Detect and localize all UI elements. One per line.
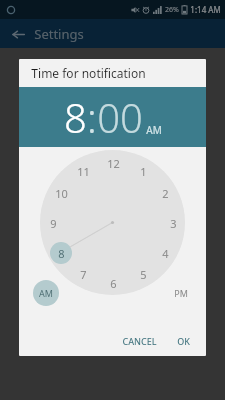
button[interactable]: AM <box>33 280 59 306</box>
staticText: 3 <box>170 216 177 231</box>
button[interactable]: 10 <box>50 182 72 204</box>
button[interactable]: 4 <box>154 242 176 264</box>
button[interactable]: AM <box>146 123 162 137</box>
staticText: 00 <box>97 90 143 144</box>
button[interactable]: 5 <box>132 263 154 285</box>
button[interactable]: CANCEL <box>116 331 163 351</box>
button[interactable]: 2 <box>154 182 176 204</box>
staticText: 8 <box>64 90 87 144</box>
staticText: 12 <box>107 156 120 171</box>
staticText: : <box>87 90 97 144</box>
button[interactable]: 8 <box>50 242 72 264</box>
button[interactable]: OK <box>171 331 196 351</box>
staticText: 9 <box>50 216 57 231</box>
staticText: OK <box>177 335 190 347</box>
staticText: 7 <box>80 267 87 282</box>
staticText: AM <box>39 287 53 299</box>
button[interactable]: 11 <box>72 160 94 182</box>
button[interactable]: 9 <box>42 212 64 234</box>
staticText: 1 <box>140 164 147 179</box>
staticText: Time for notification <box>31 65 146 81</box>
staticText: 1:14 AM <box>190 4 221 15</box>
staticText: AM <box>146 123 162 137</box>
button[interactable]: 00 <box>97 90 143 144</box>
staticText: 10 <box>55 186 68 201</box>
button[interactable]: 6 <box>102 272 124 294</box>
staticText: CANCEL <box>122 335 157 347</box>
staticText: 6 <box>110 276 117 291</box>
staticText: PM <box>174 287 188 299</box>
staticText: 5 <box>140 267 147 282</box>
button[interactable]: 7 <box>72 263 94 285</box>
staticText: 11 <box>77 164 90 179</box>
button[interactable]: Back <box>8 24 28 44</box>
button[interactable]: 1 <box>132 160 154 182</box>
staticText: 2 <box>162 186 169 201</box>
staticText: Settings <box>34 25 84 43</box>
staticText: 26% <box>165 5 179 15</box>
staticText: 8 <box>58 246 65 261</box>
button[interactable]: 8 <box>64 90 87 144</box>
staticText: 4 <box>162 246 169 261</box>
button[interactable]: PM <box>168 280 194 306</box>
button[interactable]: 3 <box>162 212 184 234</box>
button[interactable]: 12 <box>102 152 124 174</box>
